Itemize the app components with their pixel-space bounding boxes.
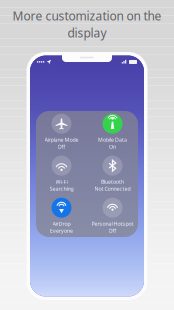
button[interactable]: Airplane Mode [36,111,87,153]
staticText: Mobile Data [98,136,127,143]
staticText: Wi-Fi [55,178,67,185]
staticText: Off [108,227,116,234]
staticText: Off [57,143,65,150]
staticText: Personal Hotspot [91,220,133,227]
button[interactable]: AirDrop [36,195,87,237]
staticText: AirDrop [52,220,70,227]
button[interactable]: Mobile Data [87,111,138,153]
button[interactable]: Wi-Fi [36,153,87,195]
staticText: On [109,143,116,150]
button[interactable]: Personal Hotspot [87,195,138,237]
staticText: Not Connected [94,185,130,192]
staticText: Everyone [50,227,73,234]
staticText: Bluetooth [101,178,124,185]
button[interactable]: Bluetooth [87,153,138,195]
staticText: Searching [49,185,73,192]
staticText: Airplane Mode [44,136,78,143]
staticText: display [67,25,106,41]
staticText: More customization on the [12,8,161,24]
